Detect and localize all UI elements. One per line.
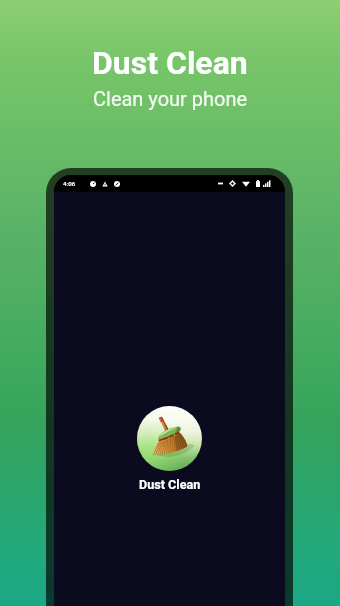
staticText: Dust Clean	[139, 477, 201, 492]
staticText: Clean your phone	[93, 87, 248, 110]
button[interactable]: Dust Clean app	[137, 406, 202, 471]
staticText: Dust Clean	[92, 44, 248, 82]
staticText: 4:06	[63, 180, 76, 187]
button[interactable]: Dust Clean app	[137, 406, 202, 492]
